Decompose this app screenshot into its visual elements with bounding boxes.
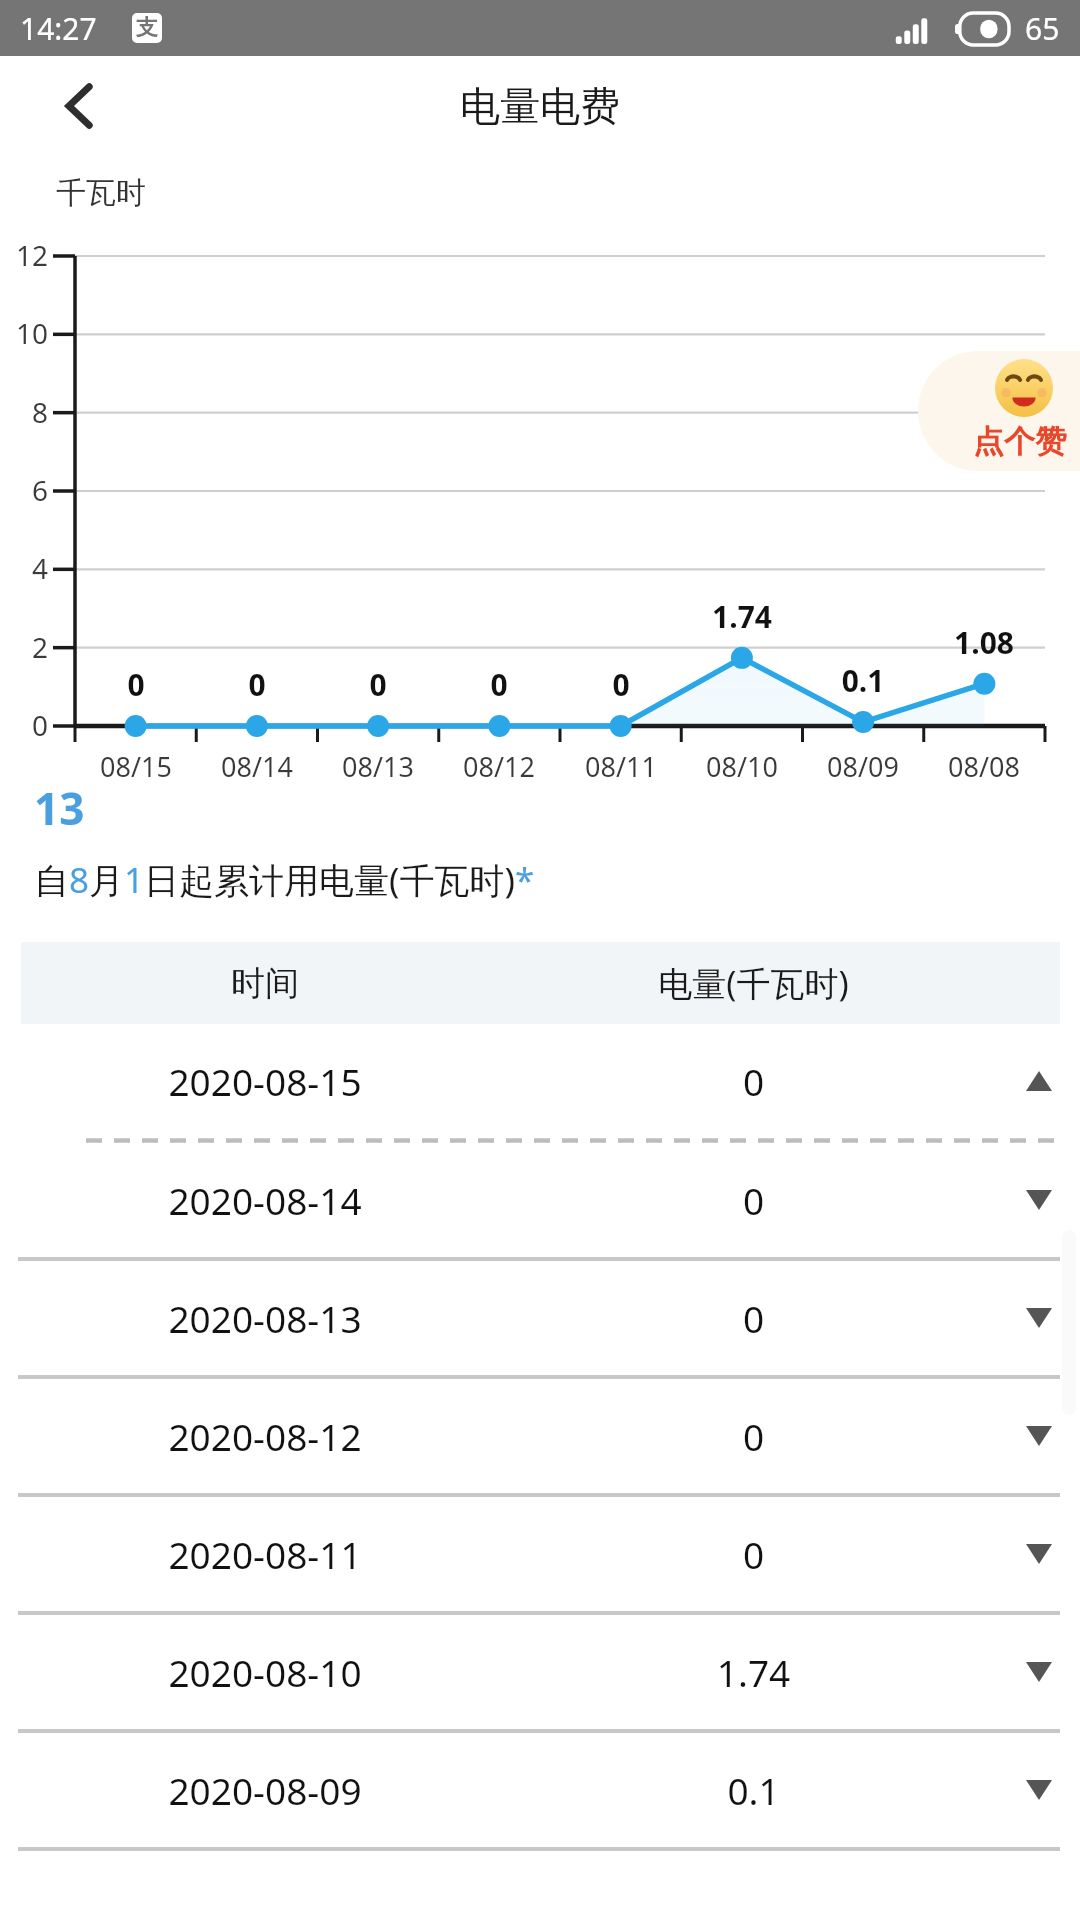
staticText: 14:27 [20, 8, 97, 49]
staticText: 08/08 [914, 748, 1054, 785]
staticText: 2020-08-10 [21, 1647, 509, 1697]
staticText: 0.1 [509, 1765, 998, 1815]
staticText: 08/15 [66, 748, 206, 785]
staticText: 1.74 [672, 596, 812, 637]
staticText: 0 [187, 664, 327, 705]
staticText: 2020-08-09 [21, 1765, 509, 1815]
button[interactable]: 2020-08-09 [0, 1733, 1080, 1847]
staticText: 08/09 [793, 748, 933, 785]
staticText: 08/12 [429, 748, 569, 785]
staticText: 时间 [21, 962, 509, 1005]
staticText: 电量电费 [460, 81, 620, 131]
button[interactable]: 2020-08-11 [0, 1497, 1080, 1611]
staticText: 8 [0, 393, 48, 431]
staticText: 0 [509, 1175, 998, 1225]
staticText: 1.74 [509, 1647, 998, 1697]
button[interactable]: 2020-08-15 [0, 1024, 1080, 1138]
staticText: 千瓦时 [56, 174, 146, 212]
staticText: 0 [509, 1056, 998, 1106]
staticText: 0 [509, 1293, 998, 1343]
staticText: 1.08 [914, 622, 1054, 663]
staticText: 点个赞 [973, 422, 1066, 461]
button[interactable]: 2020-08-14 [0, 1143, 1080, 1257]
staticText: 2020-08-13 [21, 1293, 509, 1343]
staticText: 0.1 [793, 660, 933, 701]
button[interactable]: 点个赞 [918, 351, 1080, 471]
button[interactable]: 2020-08-10 [0, 1615, 1080, 1729]
staticText: 08/14 [187, 748, 327, 785]
staticText: 0 [0, 706, 48, 744]
button[interactable]: Back [36, 62, 124, 150]
staticText: 65 [1025, 8, 1060, 49]
staticText: 0 [509, 1411, 998, 1461]
staticText: 0 [66, 664, 206, 705]
staticText: 0 [551, 664, 691, 705]
staticText: 10 [0, 314, 48, 352]
staticText: 4 [0, 549, 48, 587]
staticText: 2020-08-12 [21, 1411, 509, 1461]
staticText: 08/10 [672, 748, 812, 785]
staticText: 2020-08-15 [21, 1056, 509, 1106]
staticText: 2020-08-14 [21, 1175, 509, 1225]
staticText: 13 [34, 778, 85, 838]
staticText: 0 [308, 664, 448, 705]
staticText: 2020-08-11 [21, 1529, 509, 1579]
staticText: 电量(千瓦时) [509, 960, 998, 1006]
staticText: 12 [0, 236, 48, 274]
staticText: 0 [509, 1529, 998, 1579]
staticText: 自8月1日起累计用电量(千瓦时)* [34, 856, 535, 904]
staticText: 6 [0, 471, 48, 509]
staticText: 08/11 [551, 748, 691, 785]
button[interactable]: 2020-08-12 [0, 1379, 1080, 1493]
staticText: 0 [429, 664, 569, 705]
staticText: 2 [0, 628, 48, 666]
staticText: 支 [136, 14, 158, 42]
staticText: 08/13 [308, 748, 448, 785]
button[interactable]: 2020-08-13 [0, 1261, 1080, 1375]
